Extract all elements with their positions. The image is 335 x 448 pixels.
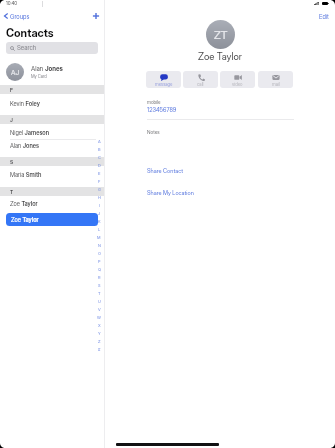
staticText: Share Contact (147, 167, 184, 174)
staticText: J (98, 211, 101, 216)
staticText: H (98, 195, 101, 200)
staticText: 10:40 (6, 1, 18, 6)
staticText: AJ (11, 68, 20, 76)
staticText: Edit (319, 13, 329, 20)
staticText: S (98, 283, 101, 288)
staticText: Zoe Taylor (10, 200, 38, 207)
staticText: J (10, 117, 13, 123)
button[interactable]: Search (6, 42, 98, 54)
button[interactable]: AJ (0, 60, 104, 84)
staticText: Maria Smith (10, 171, 42, 178)
staticText: E (98, 171, 101, 176)
staticText: T (10, 189, 14, 195)
staticText: O (98, 251, 101, 256)
staticText: Z (98, 339, 101, 344)
staticText: Share My Location (147, 189, 194, 196)
staticText: Alan Jones (10, 142, 40, 149)
button[interactable]: Share My Location (147, 189, 194, 196)
staticText: X (98, 323, 101, 328)
staticText: ZT (214, 28, 228, 41)
staticText: M (97, 235, 101, 240)
staticText: Q (98, 267, 101, 272)
staticText: P (98, 259, 101, 264)
staticText: call (197, 82, 204, 87)
staticText: mobile (147, 99, 161, 105)
button[interactable]: video (220, 71, 255, 88)
staticText: Kevin Foley (10, 100, 40, 107)
staticText: V (98, 307, 101, 312)
staticText: I (99, 203, 100, 208)
button[interactable]: message (146, 71, 181, 88)
button[interactable]: Share Contact (147, 167, 184, 174)
staticText: Zoe Taylor (198, 51, 242, 63)
staticText: mail (272, 82, 280, 87)
staticText: S (10, 159, 14, 165)
staticText: U (98, 299, 101, 304)
staticText: # (98, 347, 101, 352)
staticText: Nigel Jameson (10, 129, 50, 136)
staticText: Contacts (6, 26, 54, 40)
staticText: F (98, 179, 101, 184)
staticText: F (10, 87, 13, 93)
button[interactable]: Zoe Taylor (0, 197, 104, 210)
staticText: Search (17, 44, 37, 52)
staticText: video (232, 82, 243, 87)
staticText: Zoe Taylor (11, 216, 39, 223)
staticText: message (155, 82, 173, 87)
button[interactable]: Groups (4, 11, 30, 21)
staticText: L (98, 227, 101, 232)
staticText: W (97, 315, 101, 320)
staticText: Groups (10, 13, 30, 20)
staticText: G (98, 187, 101, 192)
button[interactable]: call (183, 71, 218, 88)
staticText: R (98, 275, 101, 280)
staticText: Alan Jones (31, 65, 63, 73)
button[interactable]: Edit (319, 11, 329, 21)
staticText: C (98, 155, 101, 160)
staticText: K (98, 219, 101, 224)
staticText: N (98, 243, 101, 248)
other: Alphabet index (96, 137, 102, 353)
staticText: D (98, 163, 101, 168)
staticText: Notes (147, 129, 160, 135)
button[interactable]: Alan Jones (0, 139, 104, 152)
staticText: T (98, 291, 101, 296)
button[interactable]: Maria Smith (0, 168, 104, 181)
staticText: B (98, 147, 101, 152)
button[interactable]: 123456789 (147, 106, 177, 113)
staticText: My Card (31, 74, 47, 79)
staticText: Y (98, 331, 101, 336)
button[interactable]: Nigel Jameson (0, 126, 104, 139)
staticText: 123456789 (147, 106, 177, 113)
button[interactable]: Add contact (89, 9, 103, 23)
button[interactable]: Kevin Foley (0, 97, 104, 110)
button[interactable]: Zoe Taylor (6, 213, 98, 226)
staticText: A (98, 139, 101, 144)
button[interactable]: mail (258, 71, 293, 88)
